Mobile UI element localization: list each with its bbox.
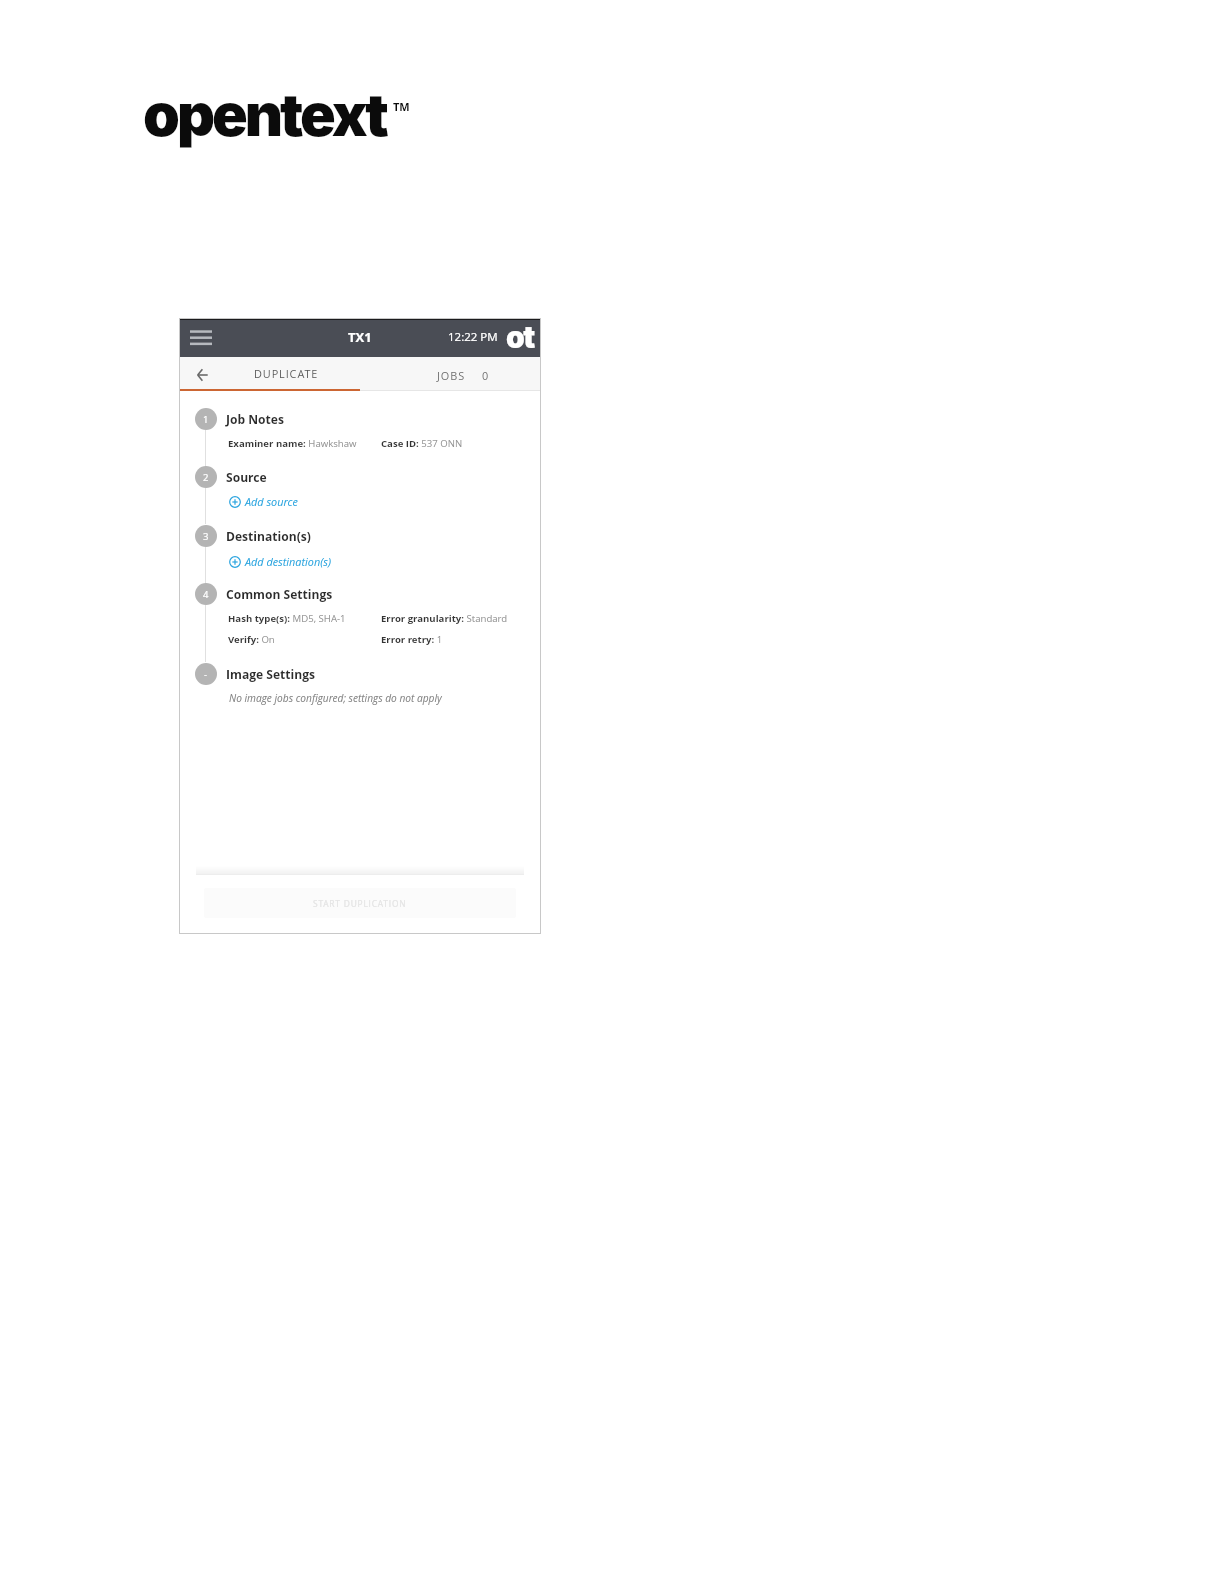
staticText: START DUPLICATION bbox=[313, 898, 407, 909]
staticText: - bbox=[204, 668, 208, 681]
staticText: Case ID: 537 ONN bbox=[381, 437, 463, 450]
staticText: 3 bbox=[203, 530, 209, 543]
staticText: ot bbox=[506, 319, 534, 355]
staticText: Hash type(s): MD5, SHA-1 bbox=[228, 612, 346, 625]
staticText: JOBS bbox=[437, 368, 466, 383]
staticText: 12:22 PM bbox=[448, 329, 498, 345]
staticText: Examiner name: Hawkshaw bbox=[228, 437, 357, 450]
staticText: Error retry: 1 bbox=[381, 633, 443, 646]
button[interactable]: - bbox=[195, 663, 515, 685]
staticText: No image jobs configured; settings do no… bbox=[229, 691, 442, 705]
staticText: Verify: On bbox=[228, 633, 275, 646]
staticText: TM bbox=[393, 99, 410, 114]
button[interactable]: 4 bbox=[195, 583, 515, 605]
button[interactable]: JOBS bbox=[360, 357, 541, 389]
staticText: 0 bbox=[482, 368, 489, 383]
staticText: 2 bbox=[203, 471, 209, 484]
button[interactable]: 1 bbox=[195, 408, 515, 430]
staticText: opentext bbox=[143, 79, 386, 150]
staticText: Destination(s) bbox=[226, 528, 311, 544]
button[interactable]: Menu bbox=[188, 325, 214, 349]
button[interactable]: 3 bbox=[195, 525, 515, 547]
button[interactable]: DUPLICATE bbox=[218, 357, 355, 389]
staticText: Add destination(s) bbox=[245, 554, 332, 569]
staticText: DUPLICATE bbox=[254, 366, 319, 381]
staticText: 4 bbox=[203, 588, 209, 601]
staticText: TX1 bbox=[348, 328, 372, 346]
staticText: Source bbox=[226, 469, 267, 485]
staticText: Error granularity: Standard bbox=[381, 612, 508, 625]
staticText: 1 bbox=[203, 413, 209, 426]
button[interactable]: 2 bbox=[195, 466, 515, 488]
staticText: Add source bbox=[245, 494, 298, 509]
button[interactable]: Add destination(s) bbox=[229, 554, 332, 569]
staticText: Common Settings bbox=[226, 586, 333, 602]
staticText: Job Notes bbox=[226, 411, 285, 427]
button[interactable]: Back bbox=[185, 362, 221, 388]
staticText: Image Settings bbox=[226, 666, 316, 682]
button[interactable]: Add source bbox=[229, 494, 298, 509]
